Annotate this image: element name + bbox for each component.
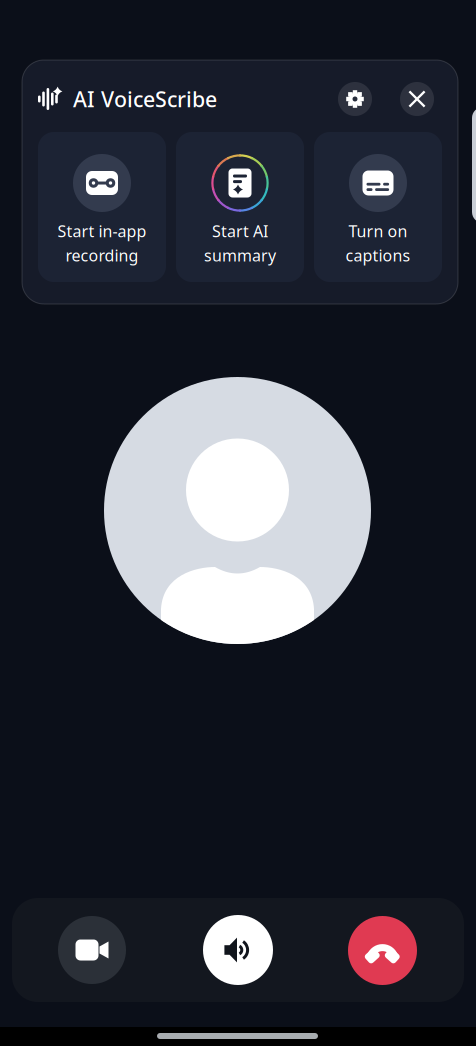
button[interactable]: Start in-app — [38, 132, 166, 282]
staticText: captions — [345, 245, 410, 266]
staticText: summary — [204, 245, 276, 266]
button[interactable]: Turn on — [314, 132, 442, 282]
button[interactable]: Turn camera off — [58, 916, 126, 984]
staticText: AI VoiceScribe — [73, 85, 217, 113]
staticText: recording — [65, 245, 138, 266]
button[interactable]: Speaker — [203, 915, 273, 985]
button[interactable]: Close — [400, 82, 434, 116]
staticText: Start AI — [212, 220, 268, 242]
staticText: Start in-app — [57, 220, 146, 242]
button[interactable]: Settings — [338, 82, 372, 116]
button[interactable]: Start AI — [176, 132, 304, 282]
button[interactable]: End call — [348, 916, 417, 985]
staticText: Turn on — [348, 220, 407, 242]
